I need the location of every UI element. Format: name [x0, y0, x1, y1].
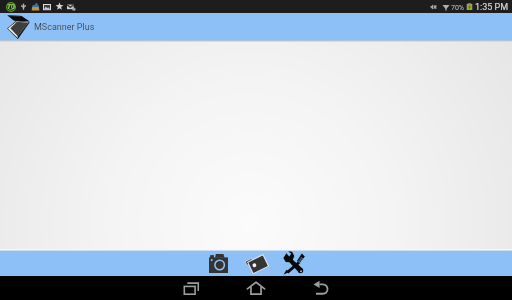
button[interactable]: Gallery	[245, 251, 270, 276]
staticText: 1:35 PM	[475, 2, 509, 13]
button[interactable]: Home	[241, 276, 271, 300]
staticText: 70	[7, 3, 15, 11]
button[interactable]: Camera	[206, 251, 231, 276]
staticText: MScanner Plus	[34, 22, 95, 33]
staticText: 70%	[451, 4, 464, 12]
button[interactable]: Tools	[282, 251, 307, 276]
button[interactable]: Recents	[176, 276, 206, 300]
button[interactable]: Back	[306, 276, 336, 300]
